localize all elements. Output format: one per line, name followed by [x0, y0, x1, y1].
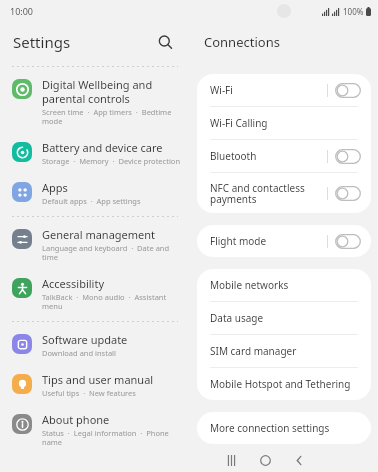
staticText: TalkBack · Mono audio · Assistant menu	[42, 292, 182, 311]
staticText: Software update	[42, 332, 128, 347]
button[interactable]: General management	[0, 220, 190, 269]
button[interactable]: About phone	[0, 405, 190, 454]
staticText: Storage · Memory · Device protection	[42, 156, 181, 166]
staticText: Default apps · App settings	[42, 196, 141, 206]
button[interactable]: Flight mode	[197, 225, 371, 257]
staticText: Battery and device care	[42, 140, 163, 155]
button[interactable]: Home	[248, 448, 282, 472]
staticText: Tips and user manual	[42, 372, 154, 387]
button[interactable]: Recent apps	[214, 448, 248, 472]
button[interactable]: Toggle	[335, 234, 361, 249]
button[interactable]: Wi-Fi	[197, 74, 371, 106]
button[interactable]: Tips and user manual	[0, 365, 190, 405]
staticText: Mobile Hotspot and Tethering	[210, 377, 361, 391]
staticText: Language and keyboard · Date and time	[42, 243, 182, 262]
staticText: Data usage	[210, 311, 361, 325]
button[interactable]: SIM card manager	[197, 335, 371, 367]
staticText: Bluetooth	[210, 149, 327, 163]
button[interactable]: Apps	[0, 173, 190, 213]
staticText: Looking for something else?	[210, 465, 343, 472]
staticText: About phone	[42, 412, 110, 427]
staticText: 100%	[343, 6, 364, 17]
button[interactable]: Digital Wellbeing and parental controls	[0, 70, 190, 133]
staticText: Accessibility	[42, 276, 105, 291]
staticText: Apps	[42, 180, 68, 195]
button[interactable]: NFC and contactless payments	[197, 173, 371, 213]
staticText: SIM card manager	[210, 344, 361, 358]
button[interactable]: Battery and device care	[0, 133, 190, 173]
button[interactable]: Data usage	[197, 302, 371, 334]
staticText: Connections	[204, 33, 280, 51]
staticText: Status · Legal information · Phone name	[42, 428, 182, 447]
button[interactable]: Toggle	[335, 149, 361, 164]
staticText: Wi-Fi Calling	[210, 116, 361, 130]
staticText: Settings	[13, 32, 71, 52]
staticText: General management	[42, 227, 156, 242]
staticText: Mobile networks	[210, 278, 361, 292]
button[interactable]: Looking for something else?	[197, 455, 371, 472]
button[interactable]: Mobile Hotspot and Tethering	[197, 368, 371, 400]
staticText: More connection settings	[210, 421, 361, 435]
button[interactable]: Back	[282, 448, 316, 472]
staticText: Wi-Fi	[210, 83, 327, 97]
staticText: Flight mode	[210, 234, 327, 248]
staticText: Screen time · App timers · Bedtime mode	[42, 107, 182, 126]
button[interactable]: Software update	[0, 325, 190, 365]
button[interactable]: Mobile networks	[197, 269, 371, 301]
button[interactable]: Accessibility	[0, 269, 190, 318]
button[interactable]: Search	[152, 29, 178, 55]
button[interactable]: Toggle	[335, 186, 361, 201]
button[interactable]: More connection settings	[197, 412, 371, 444]
button[interactable]: Toggle	[335, 83, 361, 98]
staticText: Digital Wellbeing and parental controls	[42, 77, 182, 106]
button[interactable]: Bluetooth	[197, 140, 371, 172]
staticText: Useful tips · New features	[42, 388, 136, 398]
staticText: Download and install	[42, 348, 116, 358]
button[interactable]: Wi-Fi Calling	[197, 107, 371, 139]
staticText: 10:00	[10, 5, 34, 17]
staticText: NFC and contactless payments	[210, 181, 327, 206]
